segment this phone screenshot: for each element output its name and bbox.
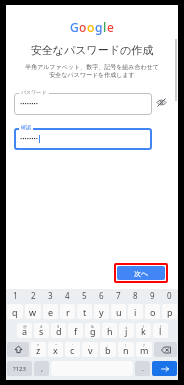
staticText: x	[53, 344, 58, 356]
button[interactable]: _	[68, 323, 83, 338]
staticText: 4	[65, 290, 70, 301]
button[interactable]: r	[60, 304, 75, 319]
staticText: ••••••••	[20, 100, 39, 108]
button[interactable]: Shift	[7, 342, 29, 357]
staticText: ?123	[13, 365, 26, 373]
staticText: f	[74, 325, 78, 337]
staticText: 次へ	[134, 269, 149, 278]
button[interactable]: 2	[24, 289, 42, 302]
button[interactable]: 5	[76, 289, 93, 302]
button[interactable]: o	[145, 304, 160, 319]
button[interactable]: パスワードを表示	[152, 93, 170, 111]
button[interactable]: ••••••••	[14, 128, 152, 150]
button[interactable]: "	[48, 342, 63, 357]
staticText: p	[167, 306, 173, 318]
staticText: ?	[143, 343, 145, 348]
staticText: '	[72, 343, 73, 348]
button[interactable]: ?123	[7, 361, 32, 376]
staticText: 5	[82, 290, 87, 301]
button[interactable]: y	[94, 304, 109, 319]
button[interactable]: 4	[59, 289, 76, 302]
button[interactable]: 1	[6, 289, 24, 302]
staticText: .	[142, 364, 144, 374]
button[interactable]: +	[119, 323, 134, 338]
button[interactable]: Backspace	[154, 342, 177, 357]
staticText: s	[39, 325, 44, 337]
staticText: g	[90, 325, 96, 337]
staticText: e	[107, 19, 114, 35]
button[interactable]: e	[43, 304, 58, 319]
button[interactable]: *	[31, 342, 46, 357]
button[interactable]: 3	[42, 289, 59, 302]
staticText: *	[37, 343, 40, 348]
staticText: 6	[99, 290, 104, 301]
staticText: 安全なパスワードの作成	[14, 43, 170, 57]
button[interactable]: @	[17, 323, 32, 338]
staticText: h	[107, 325, 113, 337]
button[interactable]: (	[136, 323, 151, 338]
staticText: @	[23, 324, 27, 329]
button[interactable]: u	[111, 304, 126, 319]
staticText: w	[29, 306, 37, 318]
staticText: ;	[107, 343, 109, 348]
staticText: +	[125, 324, 128, 329]
button[interactable]: q	[7, 304, 23, 319]
staticText: 1	[13, 290, 18, 301]
button[interactable]: #	[34, 323, 49, 338]
button[interactable]: -	[102, 323, 117, 338]
button[interactable]: :	[82, 342, 98, 357]
button[interactable]: ?	[136, 342, 152, 357]
staticText: r	[66, 306, 70, 318]
staticText: 0	[167, 290, 172, 301]
button[interactable]: ••••••••	[14, 93, 152, 115]
staticText: $	[57, 324, 60, 329]
staticText: 半角アルファベット、数字、記号を組み合わせて 安全なパスワードを作成します	[14, 63, 170, 79]
staticText: o	[87, 19, 95, 35]
button[interactable]: .	[135, 361, 150, 376]
staticText: (	[143, 324, 145, 329]
staticText: o	[150, 306, 156, 318]
staticText: :	[89, 343, 91, 348]
staticText: i	[134, 306, 137, 318]
staticText: y	[99, 306, 104, 318]
staticText: 8	[133, 290, 138, 301]
staticText: &	[91, 324, 94, 329]
staticText: パスワード	[21, 89, 47, 95]
button[interactable]: i	[128, 304, 143, 319]
staticText: c	[70, 344, 75, 356]
button[interactable]: 0	[161, 289, 178, 302]
button[interactable]: w	[25, 304, 41, 319]
button[interactable]: )	[153, 323, 168, 338]
button[interactable]: 次へ	[117, 266, 165, 280]
staticText: 2	[31, 290, 36, 301]
staticText: ••••••••	[20, 135, 39, 143]
button[interactable]: !	[118, 342, 134, 357]
button[interactable]: 7	[110, 289, 127, 302]
staticText: j	[125, 325, 128, 337]
button[interactable]: 8	[127, 289, 144, 302]
button[interactable]: p	[162, 304, 177, 319]
button[interactable]: '	[65, 342, 80, 357]
button[interactable]: ;	[100, 342, 116, 357]
staticText: "	[55, 343, 57, 348]
staticText: 3	[48, 290, 53, 301]
staticText: -	[109, 324, 111, 329]
staticText: k	[141, 325, 146, 337]
button[interactable]: 6	[93, 289, 110, 302]
button[interactable]: ,	[34, 361, 49, 376]
button[interactable]: $	[51, 323, 66, 338]
staticText: z	[36, 344, 41, 356]
staticText: l	[159, 325, 162, 337]
button[interactable]: t	[77, 304, 92, 319]
staticText: o	[79, 19, 87, 35]
staticText: u	[116, 306, 122, 318]
staticText: _	[75, 324, 77, 329]
button[interactable]: 9	[144, 289, 161, 302]
staticText: v	[88, 344, 93, 356]
staticText: d	[56, 325, 62, 337]
staticText: a	[22, 325, 28, 337]
staticText: 9	[150, 290, 155, 301]
button[interactable]: Enter	[152, 361, 177, 376]
button[interactable]: &	[85, 323, 100, 338]
